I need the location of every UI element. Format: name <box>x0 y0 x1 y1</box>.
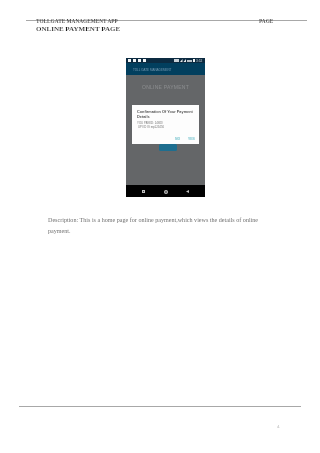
staticText: 3:52 <box>196 59 203 63</box>
button[interactable]: TOLL GATE MANAGEMENT <box>126 63 205 75</box>
button[interactable]: NO <box>175 137 181 141</box>
staticText: ONLINE PAYMENT <box>142 84 189 90</box>
staticText: 4 <box>277 424 280 430</box>
staticText: YOU PAYED: 14600 <box>137 121 163 124</box>
staticText: PAGE <box>259 18 274 24</box>
staticText: TOLLGATE MANAGEMENT APP <box>36 18 118 24</box>
button[interactable] <box>159 144 177 151</box>
button[interactable]: Home <box>162 188 169 195</box>
staticText: UPI ID IS mp123456 <box>138 125 165 128</box>
button[interactable]: Back <box>140 188 147 195</box>
staticText: Description: This is a home page for onl… <box>48 217 263 235</box>
button[interactable]: YES <box>188 137 195 141</box>
staticText: Confirmation Of Your Payment <box>137 110 193 114</box>
staticText: TOLL GATE MANAGEMENT <box>133 68 172 71</box>
button[interactable]: Recents <box>184 188 191 195</box>
staticText: Details <box>137 115 150 119</box>
staticText: ONLINE PAYMENT PAGE <box>36 25 121 33</box>
